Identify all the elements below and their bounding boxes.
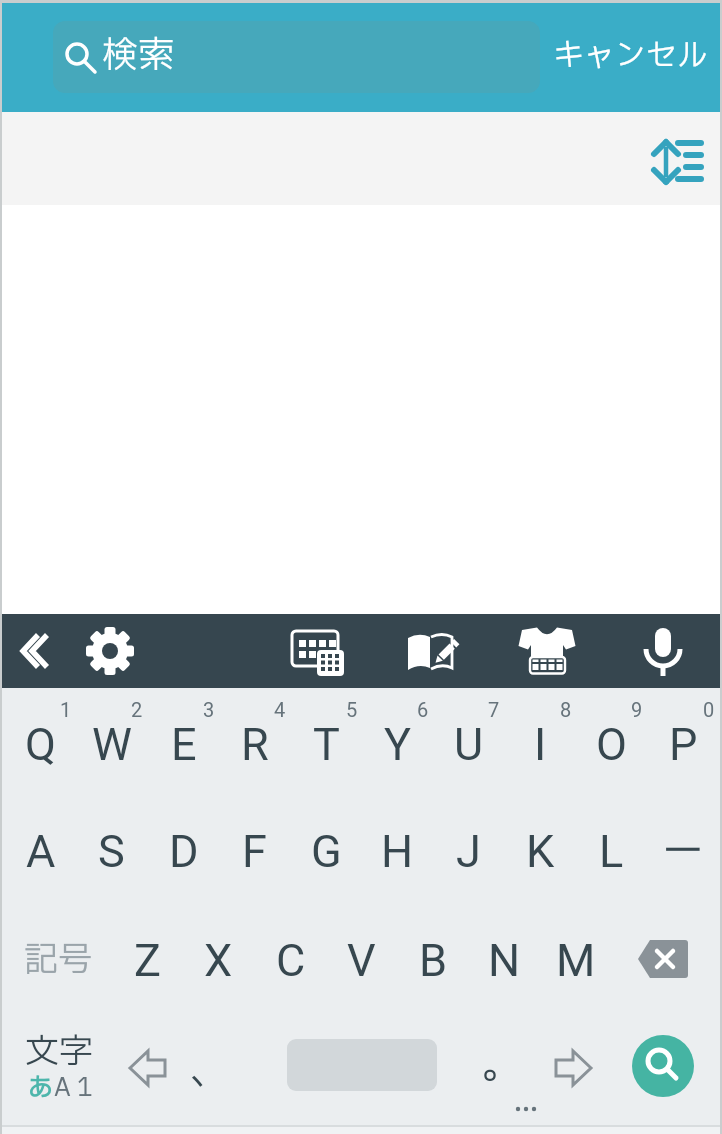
staticText: S <box>98 825 125 878</box>
button[interactable]: S <box>76 811 147 891</box>
staticText: N <box>488 934 521 987</box>
staticText: E <box>171 718 197 771</box>
button[interactable]: I <box>505 704 576 784</box>
button[interactable] <box>515 620 585 690</box>
button[interactable]: U <box>433 704 504 784</box>
button[interactable] <box>635 620 695 682</box>
button[interactable] <box>632 1035 694 1097</box>
staticText: J <box>456 825 481 878</box>
staticText: O <box>596 718 627 771</box>
button[interactable]: M <box>540 920 611 1000</box>
staticText: Z <box>134 934 161 987</box>
staticText: 6 <box>417 698 429 721</box>
staticText: F <box>242 825 267 878</box>
button[interactable]: D <box>148 811 219 891</box>
staticText: 2 <box>131 698 143 721</box>
button[interactable]: K <box>505 811 576 891</box>
button[interactable]: キャンセル <box>550 21 710 91</box>
staticText: H <box>381 825 414 878</box>
button[interactable] <box>543 1040 603 1096</box>
button[interactable]: Q <box>5 704 76 784</box>
button[interactable]: X <box>183 920 254 1000</box>
staticText: A <box>26 825 56 878</box>
staticText: あ <box>28 1070 54 1100</box>
staticText: 8 <box>560 698 572 721</box>
button[interactable]: L <box>576 811 647 891</box>
staticText: L <box>599 825 624 878</box>
button[interactable]: N <box>469 920 540 1000</box>
button[interactable]: T <box>291 704 362 784</box>
button[interactable]: ー <box>648 811 719 891</box>
button[interactable]: R <box>219 704 290 784</box>
staticText: M <box>556 934 596 987</box>
staticText: R <box>241 718 269 771</box>
staticText: Q <box>25 718 56 771</box>
button[interactable] <box>8 624 60 678</box>
staticText: X <box>204 934 233 987</box>
button[interactable]: P <box>648 704 719 784</box>
button[interactable] <box>118 1040 178 1096</box>
button[interactable]: 記号 <box>13 925 103 995</box>
button[interactable] <box>400 620 470 690</box>
staticText: 。 <box>482 1036 522 1096</box>
button[interactable]: F <box>219 811 290 891</box>
staticText: G <box>311 825 342 878</box>
staticText: 7 <box>488 698 500 721</box>
staticText: 0 <box>703 698 715 721</box>
button[interactable] <box>628 930 700 990</box>
button[interactable]: 。 <box>472 1036 532 1096</box>
button[interactable]: V <box>326 920 397 1000</box>
staticText: B <box>419 934 448 987</box>
button[interactable]: Y <box>362 704 433 784</box>
staticText: A 1 <box>54 1070 93 1100</box>
button[interactable]: G <box>291 811 362 891</box>
button[interactable]: B <box>398 920 469 1000</box>
staticText: 5 <box>346 698 358 721</box>
staticText: 検索 <box>102 29 175 83</box>
staticText: 9 <box>631 698 643 721</box>
staticText: C <box>276 934 306 987</box>
button[interactable]: 検索 <box>53 21 540 93</box>
button[interactable] <box>82 623 138 679</box>
staticText: 文字 <box>25 1027 93 1071</box>
button[interactable]: W <box>76 704 147 784</box>
button[interactable]: Z <box>112 920 183 1000</box>
staticText: ー <box>662 820 705 883</box>
staticText: 、 <box>190 1042 230 1102</box>
staticText: 1 <box>60 698 72 721</box>
button[interactable]: E <box>148 704 219 784</box>
staticText: U <box>454 718 484 771</box>
button[interactable]: O <box>576 704 647 784</box>
button[interactable] <box>288 624 348 680</box>
button[interactable]: C <box>255 920 326 1000</box>
staticText: T <box>313 718 340 771</box>
button[interactable] <box>640 128 712 194</box>
staticText: キャンセル <box>553 33 708 79</box>
staticText: 4 <box>274 698 286 721</box>
button[interactable]: 文字 <box>9 1027 109 1071</box>
staticText: Y <box>384 718 412 771</box>
staticText: I <box>534 718 547 771</box>
button[interactable]: J <box>433 811 504 891</box>
staticText: V <box>347 934 376 987</box>
staticText: W <box>92 718 132 771</box>
staticText: K <box>526 825 555 878</box>
button[interactable]: H <box>362 811 433 891</box>
button[interactable]: A <box>5 811 76 891</box>
staticText: 記号 <box>24 935 92 986</box>
staticText: D <box>169 825 199 878</box>
staticText: 3 <box>203 698 215 721</box>
button[interactable]: 、 <box>180 1042 240 1102</box>
staticText: P <box>669 718 698 771</box>
